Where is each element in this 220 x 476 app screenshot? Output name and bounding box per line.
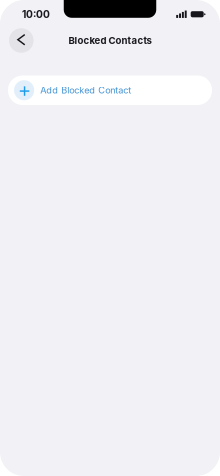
staticText: Blocked Contacts	[68, 35, 151, 46]
button[interactable]: Add Blocked Contact	[8, 75, 212, 105]
staticText: Add Blocked Contact	[40, 85, 131, 96]
staticText: 10:00	[22, 8, 50, 20]
button[interactable]: Back	[9, 28, 34, 53]
